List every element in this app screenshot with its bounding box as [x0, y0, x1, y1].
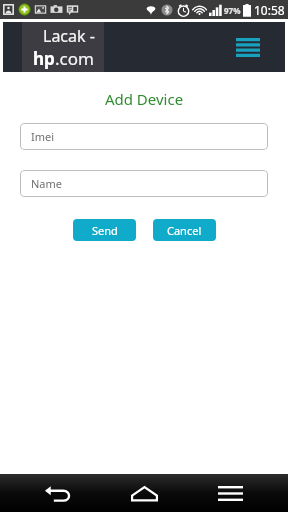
- staticText: .com: [55, 47, 94, 70]
- button[interactable]: Home: [116, 474, 172, 512]
- staticText: Imei: [31, 129, 55, 144]
- button[interactable]: Menu: [231, 32, 265, 62]
- staticText: Lacak -: [43, 25, 95, 47]
- button[interactable]: Cancel: [153, 219, 216, 241]
- button[interactable]: Lacak -: [22, 22, 104, 72]
- staticText: Cancel: [167, 223, 202, 238]
- staticText: Name: [31, 176, 63, 191]
- staticText: 10:58: [254, 2, 285, 18]
- staticText: Send: [92, 223, 118, 238]
- button[interactable]: Send: [73, 219, 136, 241]
- button[interactable]: Back: [30, 474, 86, 512]
- button[interactable]: Recent apps: [202, 474, 258, 512]
- staticText: 97%: [224, 5, 241, 16]
- button[interactable]: Imei: [20, 123, 268, 150]
- staticText: hp: [33, 47, 55, 70]
- button[interactable]: Name: [20, 170, 268, 197]
- staticText: Add Device: [0, 89, 288, 109]
